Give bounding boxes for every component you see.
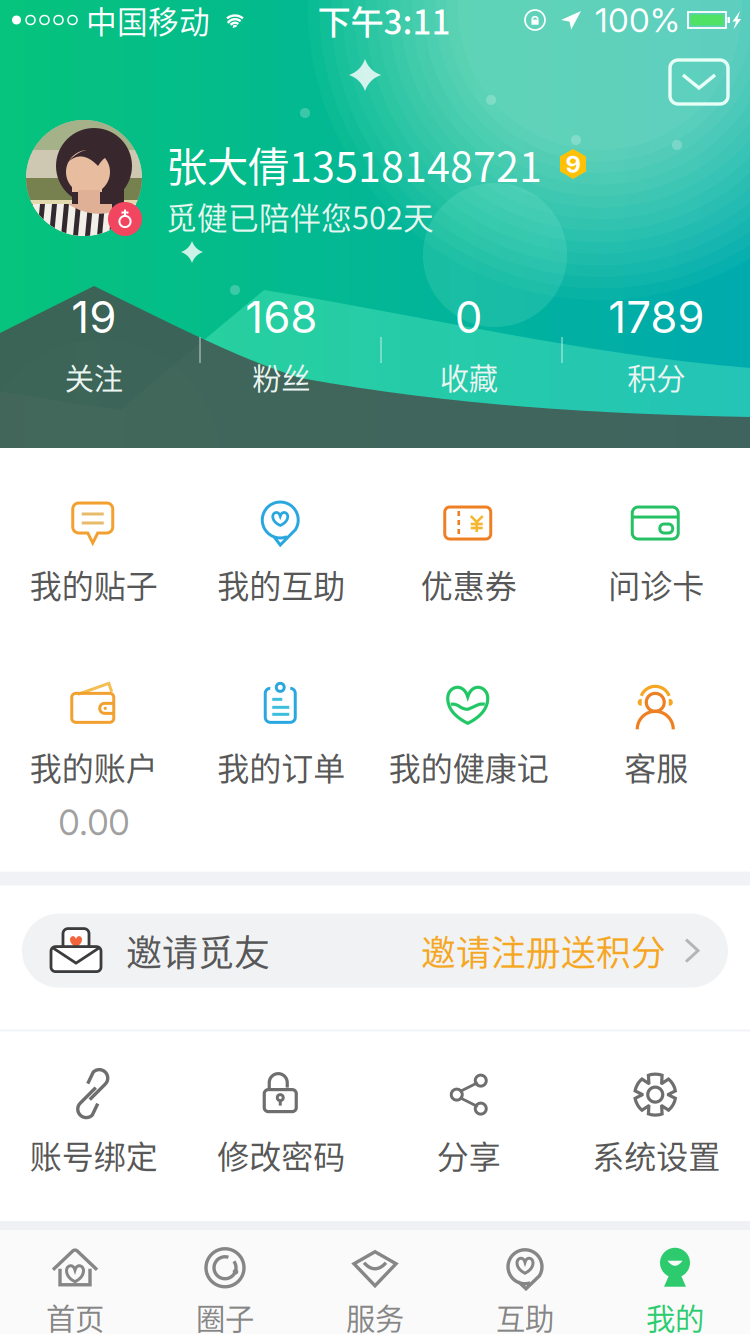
button[interactable]: 圈子 xyxy=(150,1226,300,1334)
staticText: 客服 xyxy=(624,743,688,790)
button[interactable]: 问诊卡 xyxy=(562,495,750,607)
staticText: 中国移动 xyxy=(86,0,210,42)
staticText: 100% xyxy=(595,0,680,40)
staticText: 首页 xyxy=(46,1296,104,1334)
button[interactable]: 服务 xyxy=(300,1226,450,1334)
button[interactable]: 互助 xyxy=(450,1226,600,1334)
staticText: 服务 xyxy=(346,1296,404,1334)
staticText: 我的订单 xyxy=(217,743,345,790)
staticText: 0 xyxy=(455,290,483,343)
staticText: 下午3:11 xyxy=(317,0,450,44)
staticText: 我的账户 xyxy=(30,743,158,790)
staticText: 分享 xyxy=(437,1132,501,1178)
button[interactable]: 我的贴子 xyxy=(0,495,187,607)
staticText: 我的 xyxy=(646,1296,704,1334)
button[interactable]: 客服 xyxy=(562,677,750,790)
button[interactable]: 首页 xyxy=(0,1226,150,1334)
staticText: 圈子 xyxy=(196,1296,254,1334)
button[interactable]: 我的 xyxy=(600,1226,750,1334)
staticText: 19 xyxy=(71,290,116,343)
staticText: 优惠券 xyxy=(421,561,517,607)
staticText: 问诊卡 xyxy=(608,561,704,607)
button[interactable]: 系统设置 xyxy=(562,1066,750,1178)
staticText: 0.00 xyxy=(58,802,129,844)
button[interactable]: 我的健康记 xyxy=(375,677,562,790)
staticText: 账号绑定 xyxy=(30,1132,158,1178)
staticText: 关注 xyxy=(65,355,123,398)
button[interactable]: 我的账户 xyxy=(0,677,187,790)
staticText: 张大倩13518148721 xyxy=(166,134,542,194)
button[interactable]: 优惠券 xyxy=(375,495,562,607)
staticText: 系统设置 xyxy=(592,1132,720,1178)
staticText: 我的健康记 xyxy=(389,743,549,790)
staticText: 积分 xyxy=(627,355,685,398)
button[interactable]: 我的订单 xyxy=(187,677,375,790)
button[interactable]: 账号绑定 xyxy=(0,1066,187,1178)
button[interactable]: 分享 xyxy=(375,1066,562,1178)
staticText: 9 xyxy=(565,149,580,178)
staticText: 1789 xyxy=(608,290,704,343)
button[interactable]: 168 xyxy=(187,290,375,398)
button[interactable]: 1789 xyxy=(562,290,750,398)
button[interactable]: 修改密码 xyxy=(187,1066,375,1178)
button[interactable]: 19 xyxy=(0,290,187,398)
staticText: 我的贴子 xyxy=(30,561,158,607)
button[interactable]: 我的互助 xyxy=(187,495,375,607)
staticText: 168 xyxy=(245,290,317,343)
button[interactable]: 邀请觅友 xyxy=(22,914,728,988)
staticText: 我的互助 xyxy=(217,561,345,607)
staticText: 觅健已陪伴您502天 xyxy=(166,194,434,238)
staticText: 邀请注册送积分 xyxy=(421,925,666,976)
button[interactable]: 0 xyxy=(375,290,562,398)
staticText: 粉丝 xyxy=(252,355,310,398)
staticText: 修改密码 xyxy=(217,1132,345,1178)
staticText: 收藏 xyxy=(440,355,498,398)
staticText: 邀请觅友 xyxy=(126,925,270,977)
button[interactable]: Messages xyxy=(660,50,738,114)
staticText: 互助 xyxy=(496,1296,554,1334)
